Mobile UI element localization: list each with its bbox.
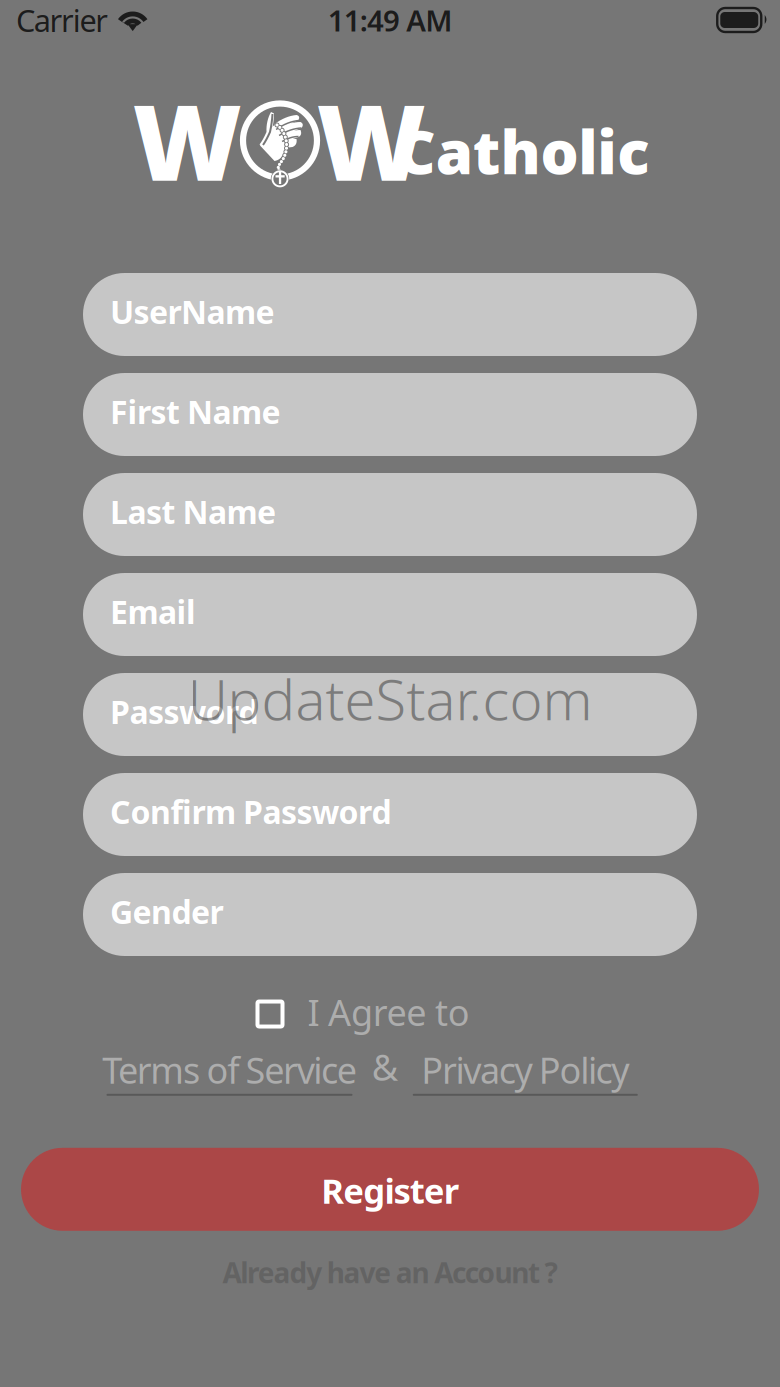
button[interactable]: First Name	[83, 373, 697, 456]
button[interactable]: UserName	[83, 273, 697, 356]
button[interactable]: Email	[83, 573, 697, 656]
button[interactable]: Password	[83, 673, 697, 756]
button[interactable]: Confirm Password	[83, 773, 697, 856]
staticText: Last Name	[110, 490, 276, 533]
button[interactable]: Already have an Account ?	[222, 1254, 558, 1291]
button[interactable]: Last Name	[83, 473, 697, 556]
staticText: Password	[110, 690, 258, 733]
button[interactable]: Register	[21, 1148, 759, 1231]
button[interactable]: Privacy Policy	[413, 1046, 638, 1096]
button[interactable]: I Agree checkbox	[251, 997, 288, 1034]
staticText: I Agree to	[307, 988, 470, 1036]
staticText: W	[316, 70, 425, 210]
staticText: Already have an Account ?	[222, 1254, 558, 1291]
staticText: W	[132, 70, 241, 210]
staticText: First Name	[110, 390, 280, 433]
staticText: Gender	[110, 890, 223, 933]
staticText: Privacy Policy	[421, 1046, 629, 1094]
staticText: 11:49 AM	[328, 0, 452, 39]
staticText: &	[372, 1043, 398, 1091]
staticText: UpdateStar.com	[187, 661, 592, 736]
staticText: Carrier	[16, 0, 108, 40]
button[interactable]: Gender	[83, 873, 697, 956]
staticText: Email	[110, 590, 196, 633]
staticText: Catholic	[397, 111, 649, 191]
button[interactable]: Terms of Service	[102, 1046, 357, 1096]
staticText: Terms of Service	[102, 1046, 357, 1094]
staticText: Confirm Password	[110, 790, 391, 833]
staticText: UserName	[110, 290, 274, 333]
staticText: Register	[321, 1167, 459, 1213]
